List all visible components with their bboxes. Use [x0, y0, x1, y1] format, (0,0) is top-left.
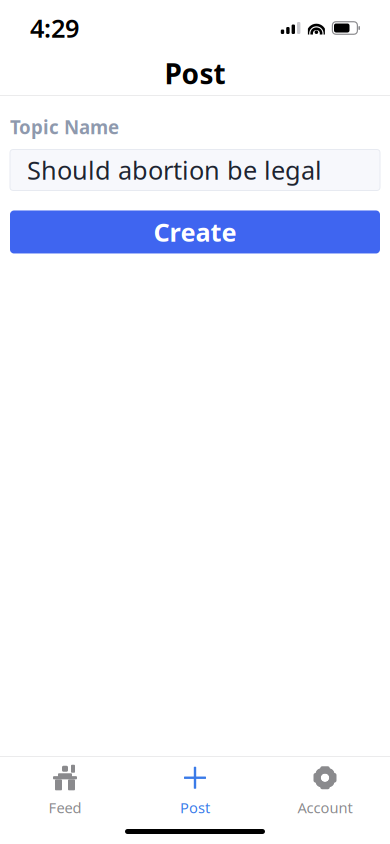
staticText: Feed	[48, 798, 81, 817]
staticText: 4:29	[30, 11, 79, 45]
button[interactable]: Account	[260, 763, 390, 819]
staticText: Should abortion be legal	[27, 153, 322, 187]
button[interactable]: Create	[10, 210, 380, 253]
staticText: Post	[164, 55, 225, 92]
staticText: Account	[297, 798, 352, 817]
staticText: Post	[180, 798, 210, 817]
button[interactable]: Post	[130, 763, 260, 819]
button[interactable]: Feed	[0, 763, 130, 819]
staticText: Topic Name	[10, 115, 119, 139]
staticText: Create	[153, 215, 236, 249]
